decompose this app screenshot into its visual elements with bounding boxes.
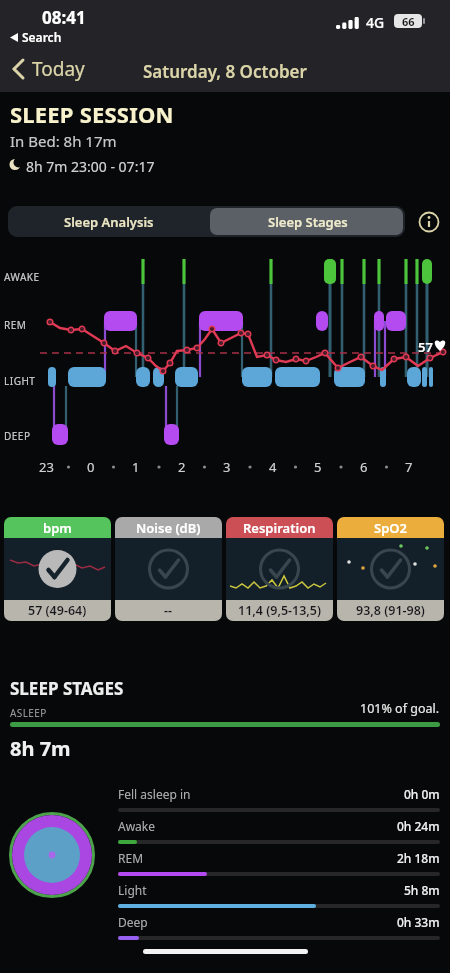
staticText: SLEEP STAGES bbox=[10, 677, 124, 700]
staticText: 57 bbox=[418, 338, 433, 356]
staticText: Fell asleep in bbox=[118, 786, 191, 802]
staticText: SLEEP SESSION bbox=[10, 99, 174, 129]
button[interactable]: SpO2 bbox=[337, 517, 444, 621]
staticText: 6 bbox=[360, 458, 368, 476]
staticText: REM bbox=[118, 850, 144, 866]
button[interactable]: Sleep Analysis bbox=[8, 206, 210, 237]
staticText: SpO2 bbox=[374, 519, 407, 537]
staticText: AWAKE bbox=[4, 270, 40, 284]
staticText: Search bbox=[22, 29, 62, 45]
button[interactable]: bpm bbox=[4, 517, 111, 621]
staticText: 5h 8m bbox=[404, 882, 440, 898]
staticText: Saturday, 8 October bbox=[143, 60, 307, 83]
staticText: 1 bbox=[132, 458, 140, 476]
staticText: 8h 7m 23:00 - 07:17 bbox=[26, 157, 155, 176]
button[interactable]: Deep bbox=[118, 914, 440, 930]
staticText: LIGHT bbox=[4, 374, 36, 388]
staticText: 4G bbox=[366, 13, 385, 32]
staticText: 66 bbox=[402, 14, 415, 28]
button[interactable]: Today bbox=[12, 56, 85, 82]
staticText: Awake bbox=[118, 818, 156, 834]
staticText: 0h 0m bbox=[404, 786, 440, 802]
staticText: 101% of goal. bbox=[360, 700, 440, 717]
staticText: Sleep Stages bbox=[268, 213, 348, 231]
button[interactable]: Noise (dB) bbox=[115, 517, 222, 621]
staticText: In Bed: 8h 17m bbox=[10, 131, 117, 151]
staticText: 0h 33m bbox=[397, 914, 440, 930]
staticText: 0h 24m bbox=[397, 818, 440, 834]
staticText: 11,4 (9,5-13,5) bbox=[238, 602, 322, 619]
button[interactable]: REM bbox=[118, 850, 440, 866]
button[interactable]: Light bbox=[118, 882, 440, 898]
button[interactable] bbox=[417, 210, 441, 234]
staticText: DEEP bbox=[4, 429, 31, 443]
staticText: 23 bbox=[39, 458, 54, 476]
staticText: bpm bbox=[43, 519, 72, 537]
button[interactable]: Respiration bbox=[226, 517, 333, 621]
staticText: 57 (49-64) bbox=[28, 602, 87, 619]
button[interactable]: Sleep Stages bbox=[210, 206, 405, 237]
staticText: 2 bbox=[178, 458, 186, 476]
staticText: 0 bbox=[87, 458, 95, 476]
staticText: 8h 7m bbox=[10, 735, 71, 762]
staticText: 08:41 bbox=[42, 6, 86, 29]
staticText: 2h 18m bbox=[397, 850, 440, 866]
staticText: Deep bbox=[118, 914, 148, 930]
staticText: Sleep Analysis bbox=[64, 213, 154, 231]
staticText: ASLEEP bbox=[10, 706, 47, 720]
staticText: 93,8 (91-98) bbox=[356, 602, 425, 619]
staticText: REM bbox=[4, 318, 27, 332]
staticText: Today bbox=[32, 56, 85, 82]
staticText: Noise (dB) bbox=[136, 519, 201, 537]
staticText: Light bbox=[118, 882, 147, 898]
staticText: -- bbox=[164, 602, 173, 619]
staticText: 3 bbox=[223, 458, 231, 476]
staticText: 7 bbox=[405, 458, 413, 476]
staticText: 5 bbox=[314, 458, 322, 476]
staticText: 4 bbox=[269, 458, 277, 476]
button[interactable]: Fell asleep in bbox=[118, 786, 440, 802]
button[interactable]: Awake bbox=[118, 818, 440, 834]
staticText: Respiration bbox=[243, 519, 316, 537]
